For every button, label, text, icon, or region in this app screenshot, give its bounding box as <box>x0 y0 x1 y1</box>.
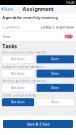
staticText: Tasks <box>2 43 17 50</box>
staticText: Done <box>51 72 59 75</box>
button[interactable]: Done <box>36 70 74 78</box>
button[interactable]: Not done <box>2 98 34 106</box>
button[interactable]: Save & Close <box>3 120 73 128</box>
staticText: Agenda for monthly meeting <box>2 15 57 20</box>
button[interactable]: Done <box>36 98 74 106</box>
staticText: Open <box>65 35 73 38</box>
staticText: Announcement of the new CEO <box>2 51 46 54</box>
staticText: Assignment <box>22 5 53 13</box>
staticText: Meeting agenda for next month <box>2 79 46 83</box>
staticText: Back <box>4 6 13 12</box>
staticText: Analysis of customer satisfaction <box>2 65 44 69</box>
staticText: Customer <box>2 24 20 30</box>
staticText: Not done <box>11 86 25 90</box>
staticText: Done <box>51 86 59 90</box>
staticText: Not done <box>11 100 25 104</box>
button[interactable]: Not done <box>2 84 34 92</box>
button[interactable]: Back <box>0 5 13 13</box>
staticText: 10:40 <box>65 0 74 5</box>
staticText: Done <box>51 100 59 104</box>
staticText: Done <box>51 57 59 61</box>
staticText: Lentos Corporation <box>41 24 74 30</box>
button[interactable]: Done <box>36 84 74 92</box>
staticText: State <box>2 34 10 39</box>
staticText: Save & Close <box>26 121 49 127</box>
staticText: Not done <box>11 72 25 75</box>
staticText: Update product roadmap <box>2 94 36 97</box>
button[interactable]: Not done <box>2 70 34 78</box>
staticText: Not done <box>11 57 25 61</box>
button[interactable]: Done <box>36 55 74 63</box>
button[interactable]: Not done <box>2 55 34 63</box>
button[interactable]: Open <box>64 35 73 38</box>
